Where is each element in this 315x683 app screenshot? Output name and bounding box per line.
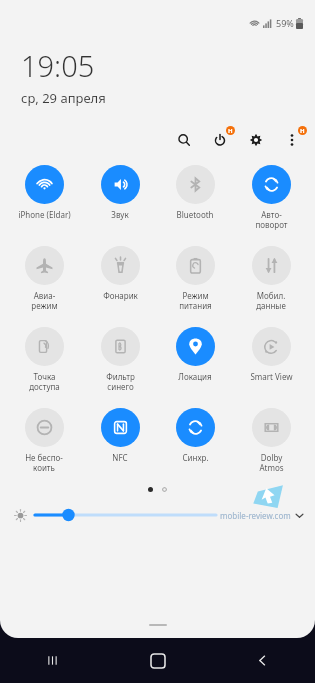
button[interactable]: Dolby Atmos bbox=[235, 408, 307, 473]
staticText: Авто- поворот bbox=[255, 209, 288, 230]
staticText: Фильтр синего bbox=[106, 371, 135, 392]
button[interactable]: Локация bbox=[159, 327, 231, 382]
staticText: Мобил. данные bbox=[256, 290, 286, 311]
staticText: 19:05 bbox=[21, 46, 95, 85]
button[interactable]: Power off bbox=[207, 127, 233, 153]
button[interactable]: Settings bbox=[243, 127, 269, 153]
staticText: H bbox=[228, 127, 233, 135]
staticText: mobile-review.com bbox=[220, 510, 291, 521]
button[interactable]: Авиа- режим bbox=[8, 246, 80, 311]
button[interactable]: NFC bbox=[84, 408, 156, 463]
staticText: H bbox=[300, 127, 305, 135]
staticText: Точка доступа bbox=[29, 371, 60, 392]
button[interactable]: iPhone (Eldar) bbox=[8, 165, 80, 220]
staticText: Фонарик bbox=[103, 290, 138, 301]
staticText: Локация bbox=[178, 371, 212, 382]
staticText: Bluetooth bbox=[176, 209, 214, 220]
button[interactable]: Мобил. данные bbox=[235, 246, 307, 311]
button[interactable]: Синхр. bbox=[159, 408, 231, 463]
staticText: iPhone (Eldar) bbox=[18, 209, 71, 220]
staticText: Не беспо- коить bbox=[25, 452, 63, 473]
button[interactable]: Brightness bbox=[35, 505, 216, 525]
button[interactable]: Bluetooth bbox=[159, 165, 231, 220]
staticText: NFC bbox=[112, 452, 128, 463]
button[interactable]: More options bbox=[279, 127, 305, 153]
button[interactable]: Режим питания bbox=[159, 246, 231, 311]
button[interactable]: Smart View bbox=[235, 327, 307, 382]
button[interactable]: Фонарик bbox=[84, 246, 156, 301]
button[interactable]: Авто- поворот bbox=[235, 165, 307, 230]
staticText: Звук bbox=[111, 209, 129, 220]
button[interactable]: Search bbox=[171, 127, 197, 153]
staticText: ср, 29 апреля bbox=[21, 89, 106, 107]
staticText: Синхр. bbox=[182, 452, 209, 463]
button[interactable]: Точка доступа bbox=[8, 327, 80, 392]
staticText: Dolby Atmos bbox=[259, 452, 284, 473]
staticText: Smart View bbox=[250, 371, 293, 382]
staticText: 59% bbox=[276, 17, 294, 29]
button[interactable]: Не беспо- коить bbox=[8, 408, 80, 473]
button[interactable]: Home bbox=[105, 638, 210, 683]
staticText: Авиа- режим bbox=[31, 290, 58, 311]
button[interactable]: Фильтр синего bbox=[84, 327, 156, 392]
staticText: Режим питания bbox=[179, 290, 212, 311]
button[interactable]: Back bbox=[210, 638, 315, 683]
button[interactable]: Expand bbox=[293, 509, 305, 521]
button[interactable]: Recents bbox=[0, 638, 105, 683]
button[interactable]: Звук bbox=[84, 165, 156, 220]
